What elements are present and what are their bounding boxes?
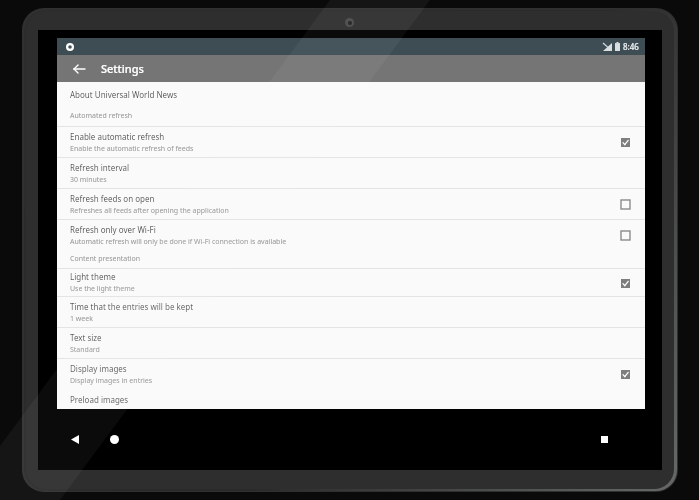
staticText: Text size [70,332,102,343]
staticText: Display images [70,363,127,374]
staticText: Enable automatic refresh [70,131,165,142]
button[interactable]: Back [64,428,86,450]
staticText: 30 minutes [70,175,107,185]
button[interactable]: About Universal World News [57,82,645,106]
staticText: 1 week [70,314,93,324]
staticText: Content presentation [70,254,141,264]
button[interactable]: Refresh feeds on open [615,194,635,214]
staticText: Time that the entries will be kept [70,301,194,312]
staticText: Light theme [70,271,116,282]
button[interactable]: Content presentation [57,250,645,268]
staticText: Enable the automatic refresh of feeds [70,144,194,154]
button[interactable]: Refresh only over Wi-Fi [615,225,635,245]
button[interactable]: Navigate up [69,59,89,79]
staticText: Refresh only over Wi-Fi [70,224,156,235]
staticText: Standard [70,345,100,355]
button[interactable]: Text size [57,328,645,358]
staticText: Refreshes all feeds after opening the ap… [70,206,229,216]
button[interactable]: Display images [57,359,645,389]
staticText: Automatic refresh will only be done if W… [70,237,287,247]
staticText: Display images in entries [70,376,153,386]
staticText: Refresh feeds on open [70,193,155,204]
button[interactable]: Enable automatic refresh [57,127,645,157]
staticText: About Universal World News [70,89,178,100]
staticText: Preload images [70,394,129,405]
button[interactable]: Refresh feeds on open [57,189,645,219]
button[interactable]: Preload images [57,389,645,409]
button[interactable]: Refresh interval [57,158,645,188]
button[interactable]: Home [103,428,125,450]
button[interactable]: Automated refresh [57,106,645,126]
staticText: Use the light theme [70,284,135,294]
button[interactable]: Enable automatic refresh [615,132,635,152]
staticText: 8:46 [623,41,639,52]
button[interactable]: Light theme [615,273,635,293]
button[interactable]: Light theme [57,269,645,296]
button[interactable]: Refresh only over Wi-Fi [57,220,645,250]
staticText: Settings [101,61,144,76]
button[interactable]: Recent apps [593,428,615,450]
button[interactable]: Display images [615,364,635,384]
staticText: Automated refresh [70,111,133,121]
button[interactable]: Time that the entries will be kept [57,297,645,327]
staticText: Refresh interval [70,162,130,173]
